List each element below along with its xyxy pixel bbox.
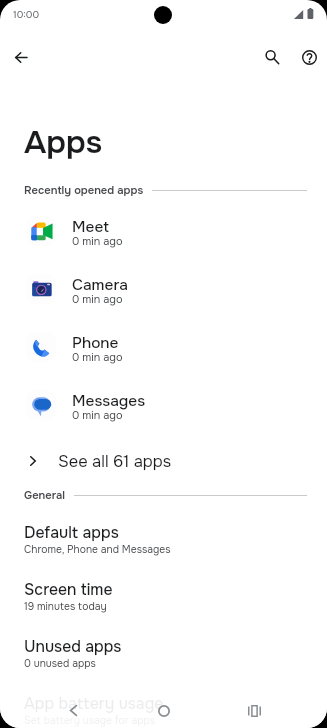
- staticText: 19 minutes today: [24, 600, 107, 613]
- button[interactable]: Unused apps: [0, 635, 327, 671]
- button[interactable]: See all 61 apps: [0, 443, 327, 479]
- staticText: General: [24, 488, 66, 502]
- staticText: Apps: [24, 122, 103, 163]
- staticText: 0 min ago: [72, 350, 123, 364]
- staticText: Camera: [72, 275, 128, 295]
- button[interactable]: Default apps: [0, 521, 327, 557]
- staticText: App battery usage: [24, 694, 164, 714]
- staticText: Phone: [72, 333, 119, 353]
- staticText: See all 61 apps: [58, 451, 172, 472]
- staticText: 0 min ago: [72, 408, 123, 422]
- button[interactable]: Phone: [0, 326, 327, 368]
- staticText: 0 min ago: [72, 292, 123, 306]
- staticText: Chrome, Phone and Messages: [24, 543, 171, 556]
- staticText: Screen time: [24, 580, 113, 600]
- staticText: Set battery usage for apps: [24, 714, 156, 727]
- button[interactable]: Messages: [0, 384, 327, 426]
- button[interactable]: Camera: [0, 268, 327, 310]
- button[interactable]: Screen time: [0, 578, 327, 614]
- button[interactable]: App battery usage: [0, 692, 327, 728]
- button[interactable]: Search: [252, 37, 292, 77]
- staticText: Messages: [72, 391, 146, 411]
- button[interactable]: Help: [289, 37, 327, 77]
- staticText: Recently opened apps: [24, 183, 144, 197]
- button[interactable]: Home: [143, 695, 185, 728]
- button[interactable]: Back: [52, 695, 94, 728]
- staticText: 10:00: [13, 8, 40, 21]
- staticText: Default apps: [24, 523, 119, 543]
- button[interactable]: Meet: [0, 210, 327, 252]
- staticText: Meet: [72, 217, 109, 237]
- staticText: 0 unused apps: [24, 657, 96, 670]
- staticText: Unused apps: [24, 637, 122, 657]
- button[interactable]: Recents: [233, 695, 275, 728]
- button[interactable]: Back: [1, 37, 41, 77]
- staticText: 0 min ago: [72, 234, 123, 248]
